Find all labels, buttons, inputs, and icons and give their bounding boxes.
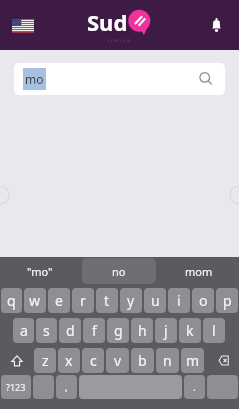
button[interactable]: mom xyxy=(159,258,239,284)
staticText: u xyxy=(151,291,160,310)
button[interactable]: q xyxy=(1,288,22,313)
staticText: m xyxy=(186,351,200,370)
button[interactable]: f xyxy=(83,318,105,343)
button[interactable]: mo xyxy=(14,63,225,95)
button[interactable]: w xyxy=(24,288,46,313)
staticText: g xyxy=(114,321,123,340)
staticText: , xyxy=(65,380,68,394)
button[interactable]: c xyxy=(82,348,104,373)
button[interactable]: ?123 xyxy=(1,375,31,399)
button[interactable]: b xyxy=(131,348,154,373)
button[interactable]: , xyxy=(56,375,77,399)
staticText: p xyxy=(223,291,232,310)
staticText: d xyxy=(66,321,75,340)
button[interactable]: x xyxy=(58,348,80,373)
button[interactable]: p xyxy=(216,288,238,313)
button[interactable]: l xyxy=(203,318,225,343)
button[interactable]: y xyxy=(120,288,142,313)
button[interactable]: k xyxy=(179,318,201,343)
staticText: LINGUA xyxy=(107,38,132,43)
staticText: "mo" xyxy=(27,264,53,279)
staticText: e xyxy=(55,291,63,310)
button[interactable]: "mo" xyxy=(0,258,79,284)
button[interactable]: Space xyxy=(79,375,182,399)
staticText: v xyxy=(114,351,122,370)
staticText: k xyxy=(186,321,194,340)
staticText: q xyxy=(7,291,16,310)
button[interactable]: u xyxy=(144,288,166,313)
staticText: z xyxy=(42,351,49,370)
staticText: f xyxy=(92,321,97,340)
staticText: j xyxy=(164,321,168,340)
button[interactable]: Search xyxy=(196,69,216,89)
button[interactable]: e xyxy=(48,288,70,313)
staticText: h xyxy=(138,321,147,340)
staticText: o xyxy=(199,291,208,310)
button[interactable]: Emoji xyxy=(33,375,54,399)
staticText: mo xyxy=(25,71,44,87)
staticText: . xyxy=(193,380,196,394)
button[interactable]: m xyxy=(181,348,204,373)
staticText: w xyxy=(29,291,41,310)
button[interactable]: j xyxy=(155,318,177,343)
staticText: r xyxy=(80,291,86,310)
button[interactable]: i xyxy=(168,288,190,313)
staticText: mom xyxy=(185,264,213,279)
staticText: ?123 xyxy=(6,381,26,393)
button[interactable]: Enter xyxy=(207,375,238,399)
staticText: i xyxy=(177,291,181,310)
staticText: x xyxy=(65,351,73,370)
staticText: t xyxy=(104,291,110,310)
button[interactable]: z xyxy=(34,348,56,373)
button[interactable]: g xyxy=(107,318,129,343)
button[interactable]: t xyxy=(96,288,118,313)
button[interactable]: v xyxy=(106,348,129,373)
staticText: a xyxy=(20,321,28,340)
staticText: c xyxy=(90,351,97,370)
staticText: n xyxy=(163,351,172,370)
button[interactable]: Language: English xyxy=(10,12,36,38)
button[interactable]: Backspace xyxy=(206,348,238,373)
button[interactable]: Notifications xyxy=(203,12,229,38)
staticText: s xyxy=(43,321,50,340)
staticText: no xyxy=(112,264,126,279)
button[interactable]: r xyxy=(72,288,94,313)
button[interactable]: no xyxy=(82,258,156,284)
staticText: Sud xyxy=(87,7,128,37)
button[interactable]: h xyxy=(131,318,153,343)
button[interactable]: Shift xyxy=(1,348,32,373)
staticText: l xyxy=(212,321,216,340)
button[interactable]: o xyxy=(192,288,214,313)
button[interactable]: n xyxy=(156,348,179,373)
staticText: y xyxy=(127,291,135,310)
staticText: b xyxy=(138,351,147,370)
button[interactable]: . xyxy=(184,375,205,399)
button[interactable]: a xyxy=(13,318,34,343)
button[interactable]: s xyxy=(36,318,57,343)
button[interactable]: d xyxy=(59,318,81,343)
